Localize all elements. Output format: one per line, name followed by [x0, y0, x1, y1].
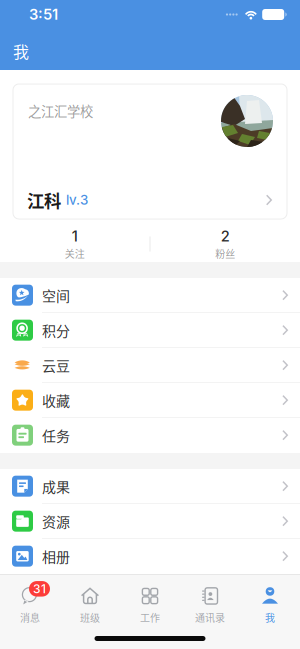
- button[interactable]: 班级: [60, 578, 120, 625]
- button[interactable]: 之江汇学校: [0, 70, 300, 219]
- staticText: 工作: [140, 610, 160, 625]
- button[interactable]: 1: [0, 227, 149, 261]
- button[interactable]: 云豆: [0, 348, 300, 383]
- button[interactable]: 成果: [0, 469, 300, 504]
- button[interactable]: 工作: [120, 578, 180, 625]
- staticText: 1: [72, 227, 78, 245]
- staticText: 消息: [20, 610, 40, 625]
- staticText: 粉丝: [215, 246, 235, 261]
- button[interactable]: 任务: [0, 418, 300, 453]
- staticText: lv.3: [66, 192, 88, 208]
- staticText: 云豆: [42, 355, 70, 375]
- button[interactable]: 资源: [0, 504, 300, 539]
- button[interactable]: 相册: [0, 539, 300, 574]
- staticText: 成果: [42, 476, 70, 496]
- button[interactable]: 31: [0, 578, 60, 625]
- staticText: 空间: [42, 285, 70, 305]
- staticText: 2: [221, 227, 230, 245]
- button[interactable]: 积分: [0, 313, 300, 348]
- staticText: 通讯录: [195, 610, 225, 625]
- button[interactable]: 2: [150, 227, 300, 261]
- staticText: 相册: [42, 546, 70, 566]
- staticText: 关注: [65, 246, 85, 261]
- button[interactable]: 我: [240, 578, 300, 625]
- staticText: 3:51: [29, 6, 58, 23]
- staticText: 班级: [80, 610, 100, 625]
- staticText: 之江汇学校: [28, 101, 93, 120]
- button[interactable]: 通讯录: [180, 578, 240, 625]
- staticText: 江科: [27, 187, 61, 213]
- staticText: 我: [13, 39, 29, 63]
- staticText: 31: [33, 582, 46, 596]
- staticText: 我: [265, 610, 275, 625]
- staticText: 积分: [42, 320, 70, 340]
- staticText: 资源: [42, 511, 70, 531]
- staticText: 任务: [42, 425, 70, 445]
- staticText: 收藏: [42, 390, 70, 410]
- button[interactable]: 收藏: [0, 383, 300, 418]
- button[interactable]: 空间: [0, 278, 300, 313]
